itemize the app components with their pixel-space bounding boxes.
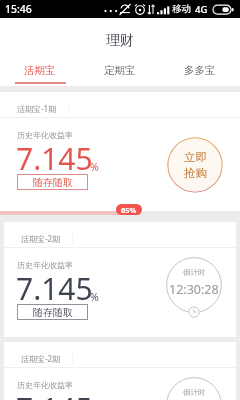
staticText: 随存随取 — [33, 176, 73, 189]
staticText: 65% — [121, 205, 137, 215]
staticText: 活期宝-2期 — [21, 353, 61, 364]
button[interactable]: 活期宝-2期 — [4, 342, 236, 400]
staticText: 立即 — [184, 150, 207, 164]
staticText: 7.145 — [16, 138, 93, 179]
staticText: 倒计时 — [183, 388, 206, 397]
staticText: 抢购 — [184, 166, 207, 180]
button[interactable]: 活期宝 — [0, 64, 80, 86]
staticText: 理财 — [106, 32, 134, 50]
staticText: 随存随取 — [33, 306, 73, 319]
staticText: 15:46 — [5, 2, 32, 16]
staticText: 历史年化收益率 — [17, 260, 73, 270]
staticText: 倒计时 — [183, 268, 206, 277]
staticText: % — [90, 160, 99, 174]
staticText: 多多宝 — [184, 64, 216, 77]
staticText: 历史年化收益率 — [17, 380, 73, 390]
button[interactable]: 随存随取 — [17, 174, 88, 190]
button[interactable]: 定期宝 — [80, 64, 160, 86]
staticText: 4G — [195, 3, 208, 16]
button[interactable]: 随存随取 — [17, 304, 88, 320]
staticText: 历史年化收益率 — [17, 130, 73, 140]
button[interactable]: 活期宝-1期 — [0, 92, 240, 211]
staticText: 移动 — [172, 3, 191, 15]
staticText: 定期宝 — [104, 64, 136, 77]
staticText: 活期宝-1期 — [17, 103, 57, 114]
button[interactable]: 多多宝 — [160, 64, 240, 86]
staticText: 7.145 — [16, 388, 93, 400]
staticText: 活期宝 — [24, 64, 56, 77]
button[interactable]: 立即抢购 — [167, 137, 223, 193]
button[interactable]: 活期宝-2期 — [4, 222, 236, 337]
staticText: % — [90, 290, 99, 304]
staticText: 12:30:28 — [169, 281, 219, 298]
staticText: 活期宝-2期 — [21, 233, 61, 244]
staticText: 7.145 — [16, 268, 93, 309]
